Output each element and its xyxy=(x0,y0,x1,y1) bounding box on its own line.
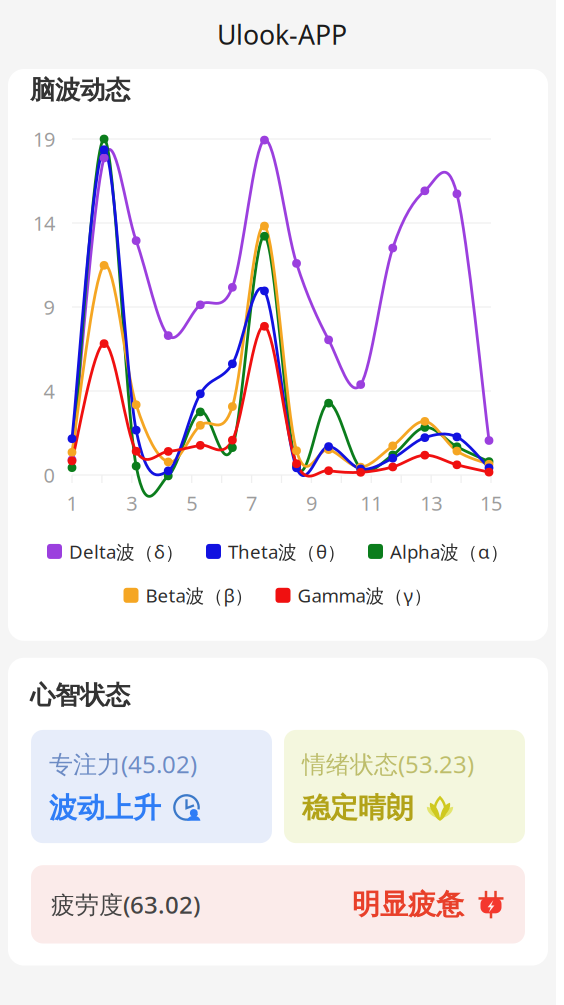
staticText: 5 xyxy=(186,490,197,516)
staticText: 波动上升 xyxy=(49,791,161,825)
staticText: 心智状态 xyxy=(30,680,130,711)
staticText: Gamma波（γ） xyxy=(297,583,432,608)
button[interactable]: 情绪状态(53.23) xyxy=(284,730,525,843)
staticText: Beta波（β） xyxy=(145,583,253,608)
staticText: 1 xyxy=(66,490,77,516)
staticText: 3 xyxy=(126,490,137,516)
staticText: 9 xyxy=(43,294,54,320)
staticText: Alpha波（α） xyxy=(390,539,509,564)
staticText: 稳定晴朗 xyxy=(302,791,414,825)
staticText: 11 xyxy=(360,490,382,516)
staticText: Delta波（δ） xyxy=(69,539,184,564)
staticText: 19 xyxy=(33,126,55,152)
staticText: 13 xyxy=(420,490,442,516)
button[interactable]: 疲劳度(63.02) xyxy=(31,865,525,944)
staticText: 4 xyxy=(43,378,54,404)
button[interactable]: Ulook-APP xyxy=(0,0,564,69)
staticText: 7 xyxy=(246,490,257,516)
staticText: 疲劳度(63.02) xyxy=(51,888,200,920)
staticText: 14 xyxy=(33,210,55,236)
staticText: Ulook-APP xyxy=(217,17,347,52)
staticText: 9 xyxy=(306,490,317,516)
staticText: Theta波（θ） xyxy=(228,539,346,564)
staticText: 专注力(45.02) xyxy=(49,748,197,780)
button[interactable]: 专注力(45.02) xyxy=(31,730,272,843)
staticText: 0 xyxy=(43,462,54,488)
staticText: 情绪状态(53.23) xyxy=(302,748,474,780)
staticText: 15 xyxy=(480,490,502,516)
staticText: 脑波动态 xyxy=(30,74,130,105)
staticText: 明显疲惫 xyxy=(352,887,464,922)
